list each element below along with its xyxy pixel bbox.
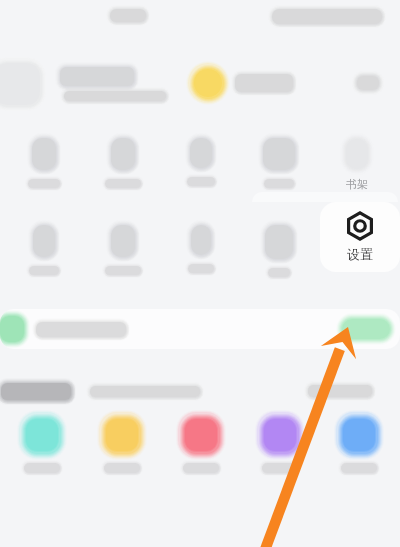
button[interactable]: 设置 — [320, 202, 400, 272]
staticText: 设置 — [347, 246, 373, 262]
other: 设置 — [346, 212, 374, 240]
button[interactable] — [83, 220, 162, 298]
button[interactable] — [162, 133, 240, 211]
button[interactable] — [240, 133, 318, 211]
staticText: 书架 — [346, 177, 368, 191]
button[interactable] — [83, 133, 162, 211]
button[interactable] — [4, 220, 83, 298]
button[interactable] — [319, 408, 398, 482]
button[interactable]: 书架 — [318, 133, 396, 211]
button[interactable] — [162, 220, 240, 298]
button[interactable] — [2, 408, 82, 482]
button[interactable] — [82, 408, 161, 482]
button[interactable] — [4, 133, 83, 211]
button[interactable] — [0, 309, 400, 349]
button[interactable] — [240, 408, 319, 482]
button[interactable] — [240, 220, 318, 298]
button[interactable] — [161, 408, 240, 482]
